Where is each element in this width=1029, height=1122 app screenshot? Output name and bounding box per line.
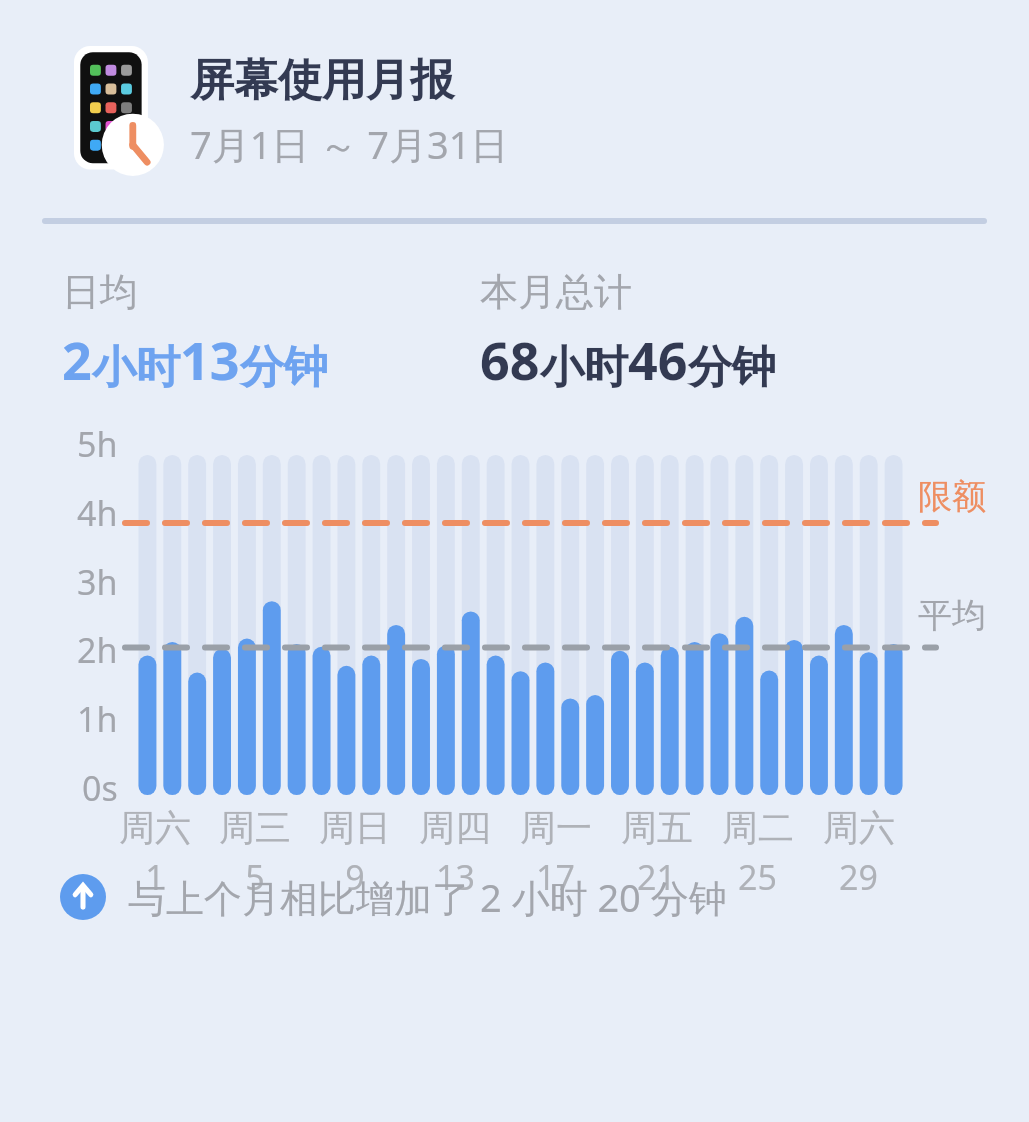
staticText: 周日 bbox=[319, 805, 391, 850]
staticText: 屏幕使用月报 bbox=[190, 53, 454, 108]
staticText: 0s bbox=[82, 765, 118, 811]
button[interactable]: Increase bbox=[60, 871, 1029, 923]
staticText: 29 bbox=[839, 854, 878, 900]
staticText: 本月总计 bbox=[480, 268, 632, 316]
staticText: 1h bbox=[77, 696, 118, 742]
staticText: 4h bbox=[77, 490, 118, 536]
staticText: 周三 bbox=[219, 805, 291, 850]
staticText: 21 bbox=[637, 854, 676, 900]
staticText: 13 bbox=[436, 854, 475, 900]
staticText: 日均 bbox=[62, 268, 138, 316]
staticText: 限额 bbox=[918, 475, 986, 518]
staticText: 25 bbox=[738, 854, 777, 900]
staticText: 68 bbox=[480, 324, 540, 395]
staticText: 平均 bbox=[918, 594, 986, 637]
staticText: 周六 bbox=[823, 805, 895, 850]
staticText: 与上个月相比增加了 2 小时 20 分钟 bbox=[128, 871, 727, 923]
other: Screen Time bbox=[74, 46, 158, 176]
staticText: 周六 bbox=[119, 805, 191, 850]
staticText: 周五 bbox=[621, 805, 693, 850]
staticText: 7月1日 ～ 7月31日 bbox=[190, 118, 509, 170]
staticText: 2h bbox=[77, 627, 118, 673]
staticText: 小时 bbox=[92, 340, 180, 395]
staticText: 周二 bbox=[722, 805, 794, 850]
staticText: 13 bbox=[180, 324, 240, 395]
staticText: 46 bbox=[628, 324, 688, 395]
staticText: 2 bbox=[62, 324, 92, 395]
staticText: 分钟 bbox=[240, 340, 328, 395]
staticText: 分钟 bbox=[688, 340, 776, 395]
button[interactable]: Screen Time bbox=[74, 46, 1029, 176]
staticText: 17 bbox=[536, 854, 575, 900]
staticText: 1 bbox=[145, 854, 165, 900]
staticText: 3h bbox=[77, 559, 118, 605]
staticText: 9 bbox=[345, 854, 365, 900]
staticText: 小时 bbox=[540, 340, 628, 395]
staticText: 周四 bbox=[419, 805, 491, 850]
staticText: 5 bbox=[245, 854, 265, 900]
other: Increase bbox=[60, 874, 106, 920]
staticText: 周一 bbox=[520, 805, 592, 850]
staticText: 5h bbox=[77, 421, 118, 467]
